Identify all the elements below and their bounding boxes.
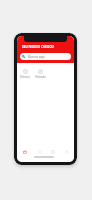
button[interactable]: Buscar aqui xyxy=(20,53,71,60)
staticText: Delivery xyxy=(20,75,30,79)
button[interactable]: Orders xyxy=(46,146,60,157)
staticText: Retirada xyxy=(35,75,46,79)
button[interactable]: Retirada xyxy=(32,69,48,79)
staticText: Buscar aqui xyxy=(28,55,46,59)
button[interactable]: Search xyxy=(33,146,47,157)
staticText: SEU PEDIDO CHEGOU xyxy=(22,45,54,49)
button[interactable]: Delivery xyxy=(17,69,33,79)
button[interactable]: Home xyxy=(18,146,32,157)
